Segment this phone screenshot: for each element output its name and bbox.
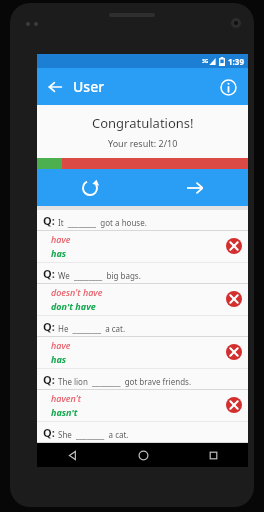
button[interactable]: Q: [37,210,248,263]
staticText: Q: [43,213,55,228]
staticText: 3G [202,58,209,65]
staticText: have [51,445,71,457]
staticText: Q: [43,372,55,387]
staticText: She ________ a cat. [58,429,129,440]
staticText: doesn't have [51,286,103,298]
button[interactable]: Recent apps [178,443,248,467]
staticText: The lion ________ got brave friends. [58,376,192,387]
button[interactable]: Back [42,74,68,100]
other: Incorrect answer [226,344,242,360]
staticText: Q: [43,425,55,440]
staticText: have [51,233,71,245]
staticText: have [51,339,71,351]
staticText: Your result: 2/10 [108,137,178,149]
staticText: Q: [43,266,55,281]
other: Incorrect answer [226,397,242,413]
button[interactable]: Q: [37,369,248,422]
staticText: He ________ a cat. [58,323,126,334]
button[interactable]: Back [37,443,108,467]
other: Incorrect answer [226,238,242,254]
button[interactable]: Restart quiz [37,169,142,206]
button[interactable]: Q: [37,316,248,369]
staticText: haven't [51,392,81,404]
other: Incorrect answer [226,291,242,307]
button[interactable]: Q: [37,263,248,316]
staticText: Congratulations! [92,114,194,132]
staticText: User [73,77,105,96]
staticText: hasn't [51,406,78,418]
staticText: don't have [51,300,96,312]
button[interactable]: Next [142,169,248,206]
staticText: Q: [43,319,55,334]
button[interactable]: Home [108,443,178,467]
staticText: has [51,353,67,365]
staticText: It ________ got a house. [58,217,147,228]
staticText: 1:39 [228,56,244,67]
staticText: has [51,247,67,259]
button[interactable]: Information [215,74,241,100]
button[interactable]: Q: [37,422,248,467]
staticText: We ________ big bags. [58,270,141,281]
